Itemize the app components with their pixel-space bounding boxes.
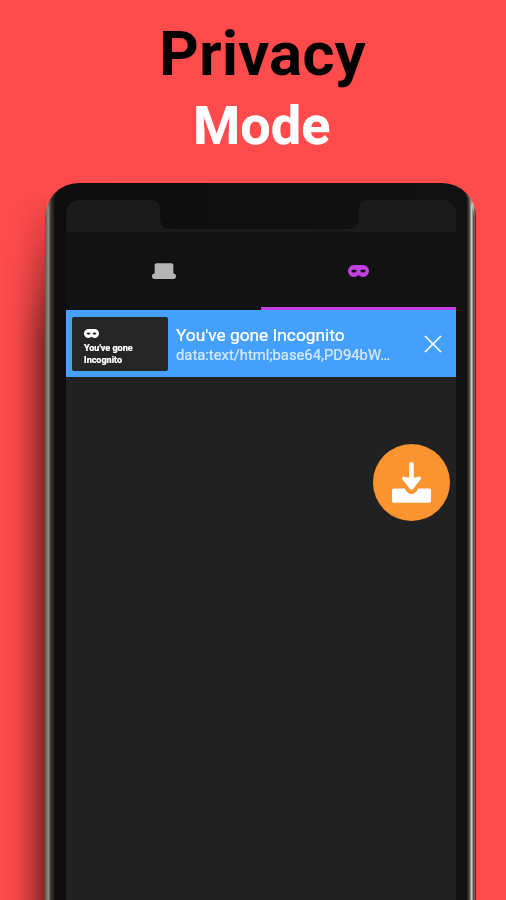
staticText: You've gone Incognito <box>176 325 345 345</box>
button[interactable]: Close <box>410 321 456 367</box>
staticText: data:text/html;base64,PD94bW… <box>176 346 391 363</box>
button[interactable]: You've gone Incognito <box>66 310 456 377</box>
button[interactable]: Desktop sites tab <box>66 232 261 310</box>
button[interactable]: Incognito tab <box>261 232 456 310</box>
staticText: Mode <box>193 94 331 157</box>
button[interactable]: Download <box>373 444 450 521</box>
staticText: You've gone Incognito <box>84 343 133 365</box>
staticText: Privacy <box>159 17 366 90</box>
